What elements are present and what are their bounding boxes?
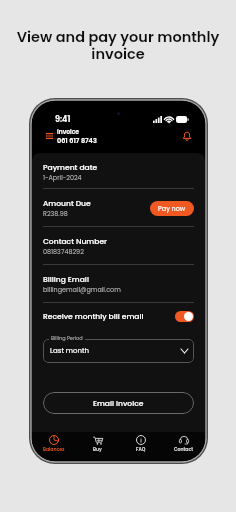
button[interactable]: Receive monthly bill email (43, 311, 194, 322)
staticText: Receive monthly bill email (43, 311, 175, 322)
button[interactable]: Contact (162, 432, 205, 461)
button[interactable]: FAQ (119, 432, 162, 461)
button[interactable]: Notifications (179, 128, 195, 144)
staticText: Payment date (43, 162, 98, 173)
button[interactable]: Balances (32, 432, 76, 461)
staticText: Buy (93, 446, 102, 452)
button[interactable]: Buy (76, 432, 119, 461)
staticText: 1-April-2024 (43, 173, 82, 182)
button[interactable]: Email Invoice (43, 392, 194, 414)
button[interactable]: Menu (43, 130, 55, 142)
staticText: 061 617 8743 (57, 136, 97, 145)
staticText: 08183748292 (43, 247, 84, 256)
staticText: Balances (43, 446, 65, 452)
staticText: Billing Period (51, 335, 83, 342)
staticText: Pay now (158, 204, 186, 213)
staticText: FAQ (136, 446, 146, 452)
staticText: Contact Number (43, 236, 108, 247)
button[interactable]: Pay now (150, 201, 194, 216)
staticText: Last month (50, 346, 181, 356)
staticText: billingemail@gmail.com (43, 285, 121, 294)
staticText: R238.98 (43, 209, 68, 218)
button[interactable]: Last month (43, 339, 194, 363)
staticText: Billing Email (43, 274, 89, 285)
staticText: Invoice (57, 128, 80, 136)
staticText: Contact (174, 446, 193, 452)
staticText: Amount Due (43, 198, 91, 209)
staticText: Email Invoice (93, 398, 144, 409)
staticText: View and pay your monthly invoice (0, 27, 236, 65)
staticText: 9:41 (55, 114, 71, 125)
